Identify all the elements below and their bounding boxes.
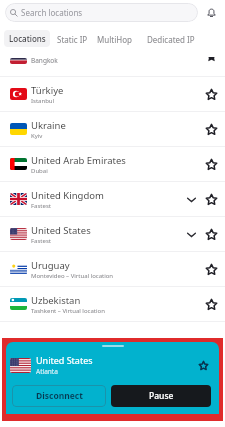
button[interactable]: Favorite [195,357,211,373]
staticText: Istanbul [31,97,55,105]
button[interactable]: United States [0,217,225,252]
button[interactable]: Uruguay [0,252,225,287]
button[interactable]: Disconnect [12,385,106,407]
staticText: Locations [9,33,46,44]
staticText: United States [31,224,91,237]
staticText: Bangkok [31,57,58,65]
staticText: United Arab Emirates [31,154,126,167]
button[interactable]: United States [10,353,211,377]
button[interactable]: Ukraine [0,112,225,147]
button[interactable]: Locations [4,30,50,47]
staticText: Montevideo – Virtual location [31,272,114,280]
button[interactable]: Pause [111,385,211,407]
staticText: Uruguay [31,259,70,272]
button[interactable]: Türkiye [0,77,225,112]
staticText: Fastest [31,202,51,210]
button[interactable]: Static IP [57,34,88,45]
staticText: Disconnect [36,390,83,402]
button[interactable]: United Arab Emirates [0,147,225,182]
staticText: Fastest [31,237,51,245]
staticText: Ukraine [31,119,66,132]
staticText: Search locations [21,7,83,18]
staticText: Uzbekistan [31,294,81,307]
button[interactable]: United Kingdom [0,182,225,217]
staticText: United Kingdom [31,189,104,202]
staticText: Dubai [31,167,48,175]
staticText: Tashkent – Virtual location [31,307,105,315]
button[interactable]: Bangkok [0,57,225,77]
staticText: Atlanta [36,367,58,376]
staticText: Kyiv [31,132,43,140]
button[interactable]: Search locations [5,3,198,22]
staticText: Türkiye [31,84,64,97]
button[interactable]: Notifications [201,2,221,22]
staticText: United States [36,354,93,366]
button[interactable]: Dedicated IP [147,34,195,45]
staticText: Pause [149,390,174,402]
button[interactable]: MultiHop [97,34,132,45]
button[interactable]: Uzbekistan [0,287,225,322]
